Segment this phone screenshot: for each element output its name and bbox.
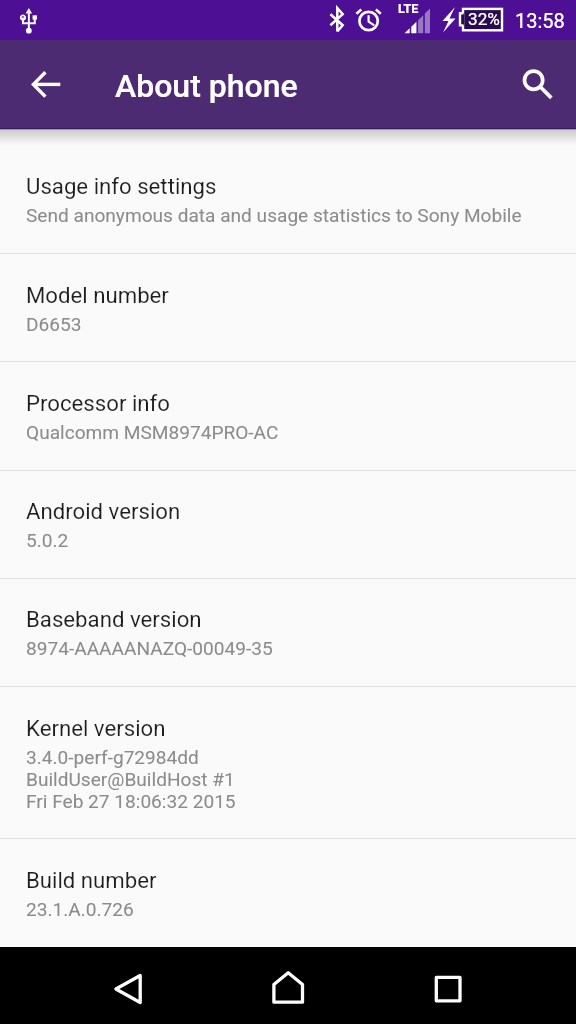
staticText: 8974-AAAAANAZQ-00049-35 [26,637,273,659]
staticText: Baseband version [26,606,202,632]
staticText: 3.4.0-perf-g72984dd [26,746,199,768]
staticText: Android version [26,498,181,524]
button[interactable]: Model number [0,254,576,362]
staticText: About phone [115,67,298,105]
button[interactable]: Home [252,950,324,1022]
staticText: Processor info [26,390,170,416]
button[interactable]: Back [92,950,164,1022]
staticText: 13:58 [515,9,565,32]
button[interactable]: Processor info [0,362,576,471]
button[interactable]: Navigate up [17,56,73,112]
staticText: 5.0.2 [26,529,69,551]
staticText: 32% [468,9,500,29]
staticText: Build number [26,867,157,893]
button[interactable]: Baseband version [0,579,576,687]
staticText: 23.1.A.0.726 [26,898,134,920]
staticText: Send anonymous data and usage statistics… [26,204,522,226]
staticText: D6653 [26,313,82,335]
staticText: Kernel version [26,715,166,741]
staticText: Qualcomm MSM8974PRO-AC [26,421,279,443]
staticText: Fri Feb 27 18:06:32 2015 [26,790,236,812]
staticText: Model number [26,282,169,308]
button[interactable]: Recent apps [412,950,484,1022]
button[interactable]: Build number [0,839,576,947]
button[interactable]: Kernel version [0,687,576,839]
staticText: Usage info settings [26,173,217,199]
button[interactable]: Android version [0,471,576,579]
button[interactable]: Usage info settings [0,145,576,254]
staticText: LTE [398,1,419,16]
staticText: BuildUser@BuildHost #1 [26,768,235,790]
button[interactable]: Search [509,56,557,104]
